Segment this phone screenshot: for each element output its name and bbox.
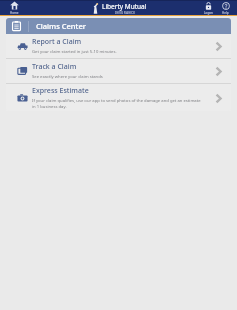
staticText: See exactly where your claim stands xyxy=(32,74,103,80)
staticText: If your claim qualifies, use our app to … xyxy=(32,98,205,109)
button[interactable]: Home xyxy=(3,0,25,16)
staticText: Claims Center xyxy=(36,21,86,31)
button[interactable]: Open Express Estimate xyxy=(209,89,227,107)
button[interactable]: Help xyxy=(217,0,234,16)
button[interactable]: Open Track a Claim xyxy=(209,62,227,80)
button[interactable]: Open Report a Claim xyxy=(209,37,227,55)
staticText: Express Estimate xyxy=(32,86,89,96)
button[interactable]: Report a Claim xyxy=(6,34,231,58)
button[interactable]: Express Estimate xyxy=(6,84,231,111)
staticText: Track a Claim xyxy=(32,62,77,72)
button[interactable]: Logon xyxy=(200,0,217,16)
staticText: Help xyxy=(222,11,229,15)
staticText: Liberty Mutual xyxy=(102,2,147,11)
staticText: Home xyxy=(10,11,19,15)
staticText: Logon xyxy=(204,11,213,15)
button[interactable]: Track a Claim xyxy=(6,59,231,83)
staticText: I N S U R A N C E xyxy=(115,11,135,15)
staticText: Get your claim started in just 5-10 minu… xyxy=(32,49,117,55)
staticText: Report a Claim xyxy=(32,37,82,47)
button[interactable]: Claims Center xyxy=(6,18,231,34)
